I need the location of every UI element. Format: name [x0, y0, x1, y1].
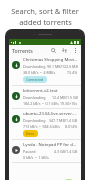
staticText: Connected [26, 77, 44, 82]
button[interactable]: Connected [23, 76, 47, 83]
staticText: 347.7 MB/1.4 GB [49, 118, 78, 123]
staticText: Downloading [23, 95, 46, 100]
staticText: Lynda - Notepad PP for developers [23, 142, 78, 148]
staticText: ubuntu-23.04-live-server-amd64.iso [23, 111, 78, 117]
staticText: 4.3 GB/1.4 GB [54, 149, 78, 154]
button[interactable]: Add torrent [61, 179, 77, 180]
staticText: Torrents [12, 47, 33, 54]
staticText: 19.30×10s [60, 101, 78, 106]
staticText: Error [26, 131, 35, 136]
staticText: 0 kB/s • 1 kB/s [23, 155, 49, 160]
staticText: added torrents [19, 17, 72, 27]
staticText: 12.4 MB/1.5 GB [52, 95, 78, 100]
staticText: 184.2 kB/s • 0.1 kB/s [23, 101, 59, 106]
staticText: 38.0 kB/s • 4 MB/s [23, 70, 56, 75]
staticText: Christmas Shopping Movie (1993) [23, 57, 78, 63]
button[interactable]: ubuntu-23.04-live-server-amd64.iso [9, 109, 81, 139]
button[interactable]: Christmas Shopping Movie (1993) [9, 55, 81, 85]
button[interactable]: More options [71, 46, 79, 54]
staticText: 73.4% [67, 70, 78, 75]
staticText: 90.1 MB/122.6 MB [47, 64, 78, 69]
button[interactable]: Error [23, 130, 38, 137]
button[interactable]: bittorrent-v2-test [9, 86, 81, 108]
staticText: Search, sort & filter [11, 6, 79, 16]
staticText: 713 kB/s • 584.6 kB/s [23, 124, 60, 129]
button[interactable]: Lynda - Notepad PP for developers [9, 140, 81, 162]
button[interactable]: Search [49, 46, 57, 54]
button[interactable]: Sort and filter [60, 46, 68, 54]
staticText: Downloading [23, 64, 46, 69]
staticText: 8.014% [65, 124, 78, 129]
staticText: Downloading [23, 118, 46, 123]
staticText: Paused [23, 149, 36, 154]
staticText: bittorrent-v2-test [23, 88, 58, 94]
